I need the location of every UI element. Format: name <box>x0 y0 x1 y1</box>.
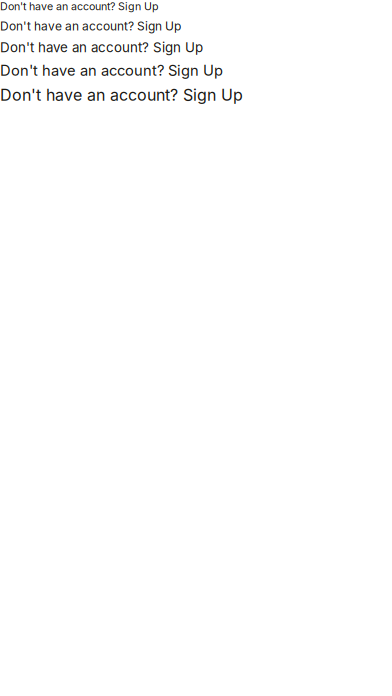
staticText: Don't have an account? Sign Up <box>0 19 181 33</box>
staticText: Don't have an account? Sign Up <box>0 39 203 55</box>
staticText: Don't have an account? Sign Up <box>0 85 243 105</box>
staticText: Don't have an account? Sign Up <box>0 0 159 13</box>
staticText: Don't have an account? Sign Up <box>0 62 223 79</box>
